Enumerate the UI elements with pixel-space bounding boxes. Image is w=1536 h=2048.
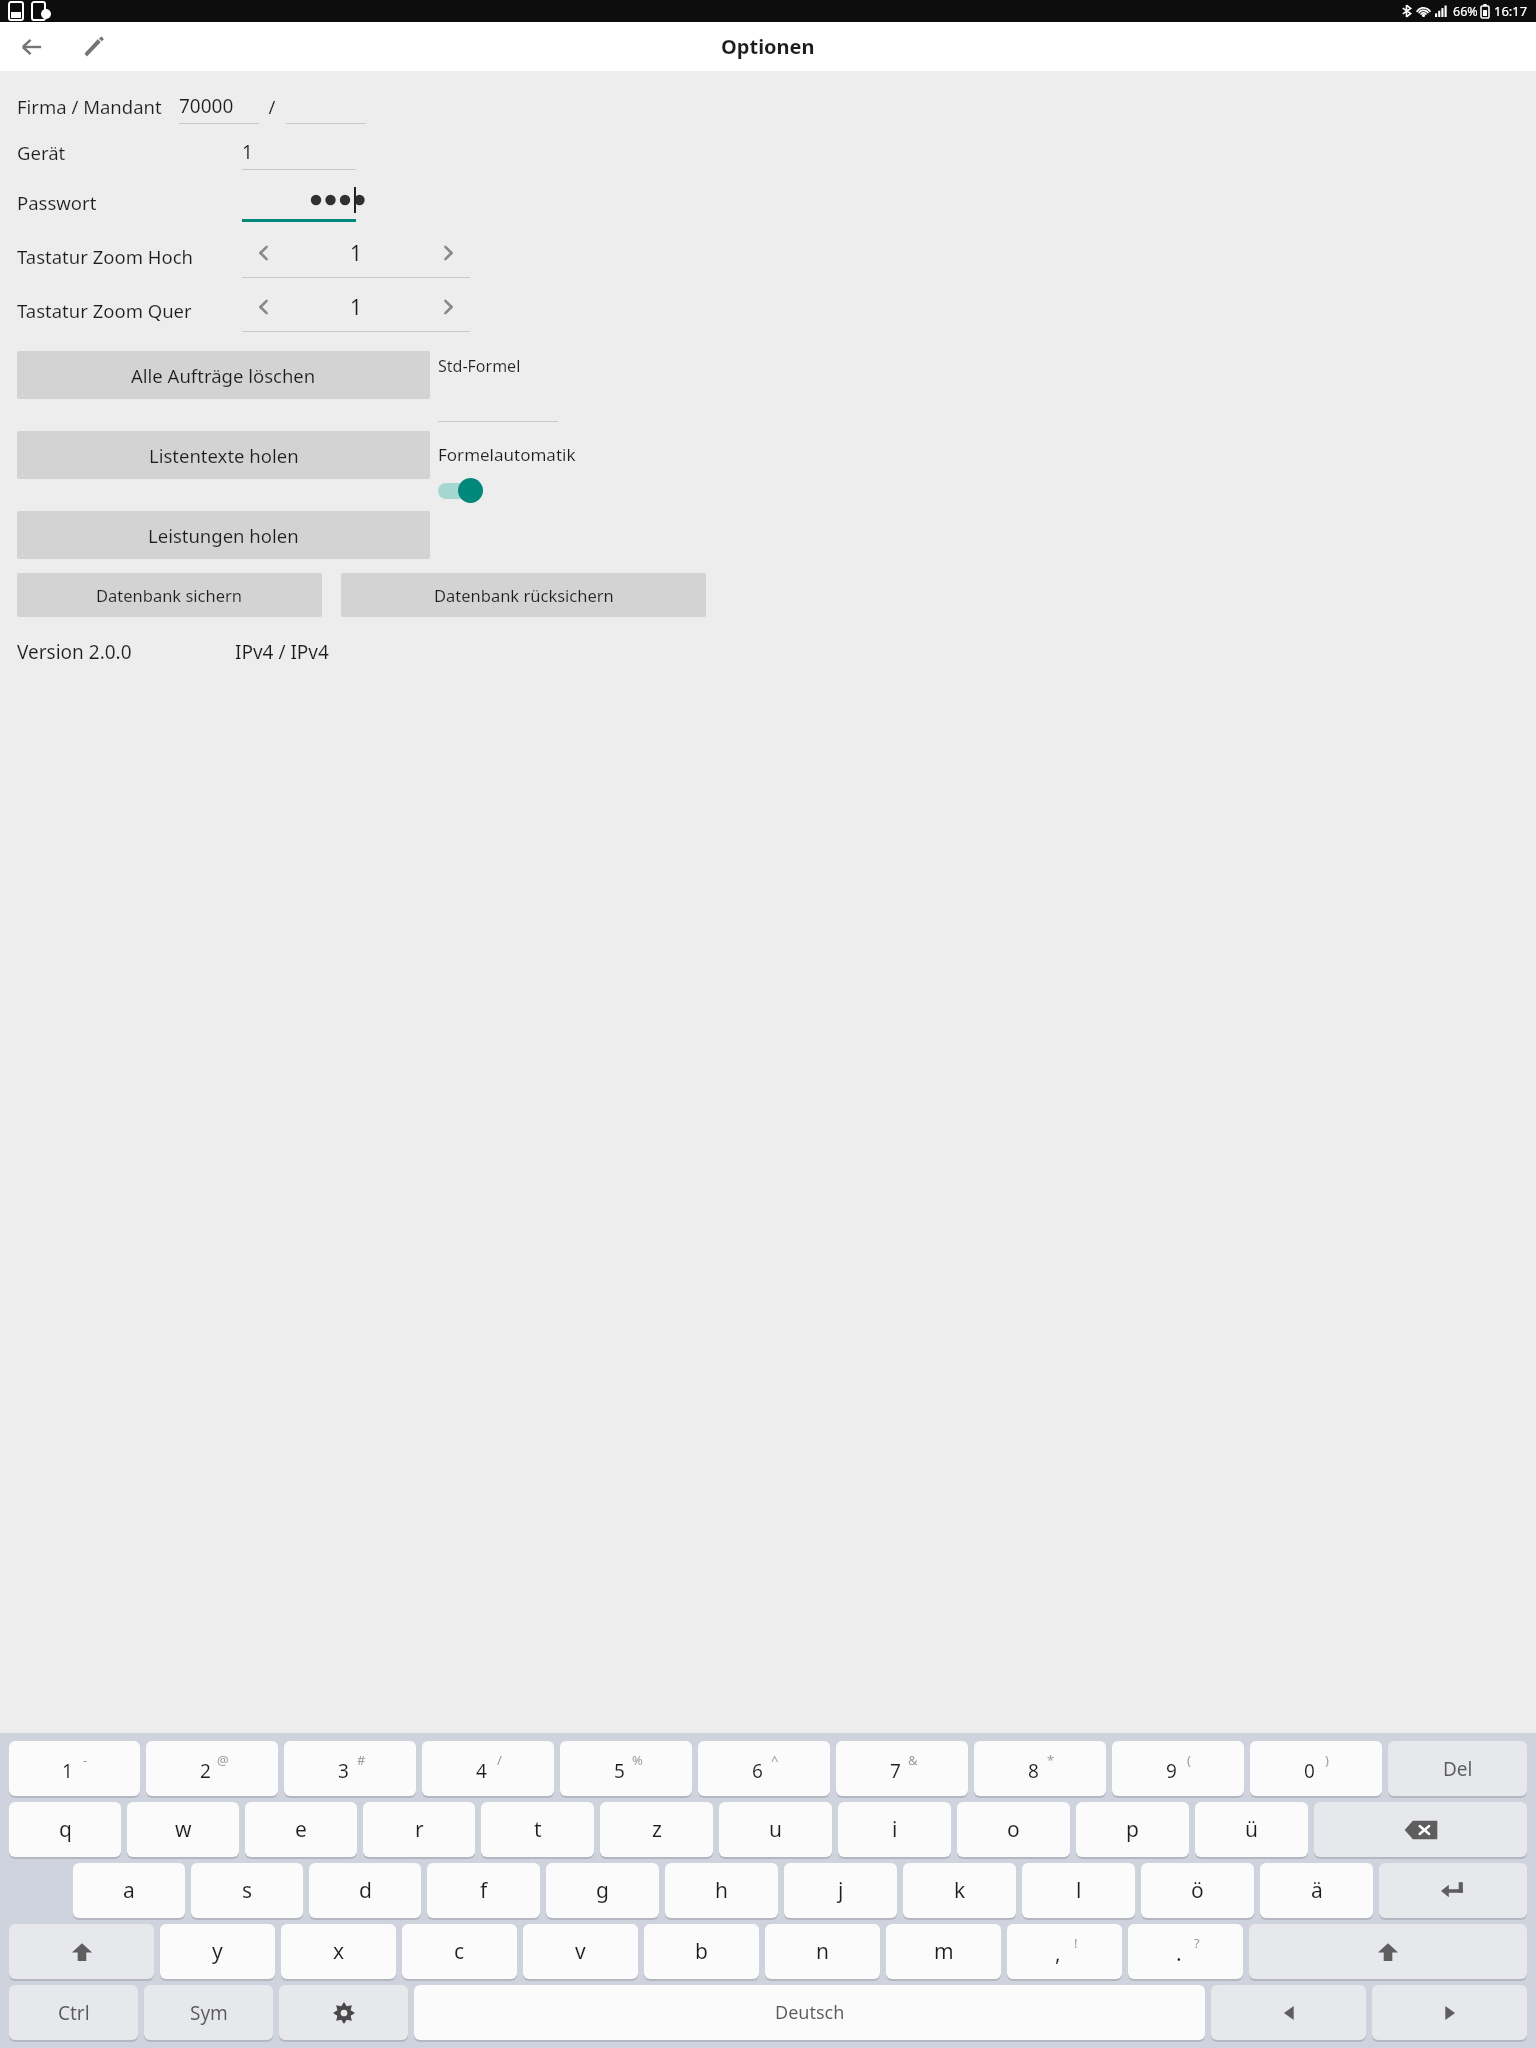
staticText: w: [175, 1815, 192, 1844]
button[interactable]: i: [838, 1802, 951, 1857]
staticText: &: [908, 1751, 918, 1769]
button[interactable]: j: [784, 1863, 897, 1918]
button[interactable]: ö: [1141, 1863, 1254, 1918]
button[interactable]: s: [191, 1863, 303, 1918]
staticText: /: [259, 94, 286, 119]
staticText: i: [892, 1815, 898, 1844]
button[interactable]: Alle Aufträge löschen: [17, 351, 430, 399]
button[interactable]: t: [481, 1802, 594, 1857]
staticText: 7: [890, 1758, 901, 1784]
staticText: j: [838, 1876, 844, 1905]
button[interactable]: d: [309, 1863, 421, 1918]
button[interactable]: n: [765, 1924, 880, 1979]
button[interactable]: 1: [9, 1741, 140, 1796]
button[interactable]: o: [957, 1802, 1070, 1857]
button[interactable]: Datenbank sichern: [17, 573, 322, 617]
staticText: ^: [771, 1751, 779, 1769]
button[interactable]: Datenbank rücksichern: [341, 573, 706, 617]
button[interactable]: 70000: [179, 88, 259, 124]
staticText: 5: [614, 1758, 625, 1784]
button[interactable]: a: [73, 1863, 185, 1918]
staticText: Ctrl: [58, 2000, 90, 2026]
staticText: (: [1187, 1751, 1191, 1769]
staticText: n: [816, 1937, 829, 1966]
staticText: Passwort: [17, 190, 97, 215]
button[interactable]: Umschalt: [1249, 1924, 1527, 1979]
staticText: *: [1047, 1751, 1055, 1769]
button[interactable]: r: [363, 1802, 475, 1857]
button[interactable]: c: [402, 1924, 517, 1979]
button[interactable]: 9: [1112, 1741, 1244, 1796]
button[interactable]: 4: [422, 1741, 554, 1796]
button[interactable]: Erhöhen: [426, 234, 470, 272]
button[interactable]: b: [644, 1924, 759, 1979]
staticText: Firma / Mandant: [17, 94, 162, 119]
staticText: Datenbank rücksichern: [434, 584, 614, 606]
button[interactable]: 8: [974, 1741, 1106, 1796]
button[interactable]: w: [127, 1802, 239, 1857]
staticText: Datenbank sichern: [96, 584, 243, 606]
button[interactable]: [242, 182, 356, 222]
button[interactable]: v: [523, 1924, 638, 1979]
button[interactable]: Del: [1388, 1741, 1527, 1796]
button[interactable]: Eingabe: [1379, 1863, 1527, 1918]
staticText: 1: [242, 139, 253, 165]
staticText: Deutsch: [775, 2000, 845, 2025]
button[interactable]: h: [665, 1863, 778, 1918]
button[interactable]: k: [903, 1863, 1016, 1918]
button[interactable]: z: [600, 1802, 713, 1857]
button[interactable]: Leistungen holen: [17, 511, 430, 559]
button[interactable]: p: [1076, 1802, 1189, 1857]
button[interactable]: g: [546, 1863, 659, 1918]
button[interactable]: e: [245, 1802, 357, 1857]
button[interactable]: Ctrl: [9, 1985, 138, 2040]
staticText: 1: [350, 293, 363, 322]
button[interactable]: Rechts: [1372, 1985, 1527, 2040]
button[interactable]: f: [427, 1863, 540, 1918]
staticText: s: [242, 1876, 253, 1905]
staticText: l: [1076, 1876, 1082, 1905]
button[interactable]: x: [281, 1924, 396, 1979]
button[interactable]: y: [160, 1924, 275, 1979]
button[interactable]: 7: [836, 1741, 968, 1796]
button[interactable]: u: [719, 1802, 832, 1857]
button[interactable]: Erhöhen: [426, 288, 470, 326]
button[interactable]: Bearbeiten: [70, 23, 118, 71]
button[interactable]: 0: [1250, 1741, 1382, 1796]
button[interactable]: Zurück: [8, 23, 56, 71]
staticText: 1: [62, 1758, 73, 1784]
staticText: a: [123, 1876, 135, 1905]
staticText: h: [715, 1876, 728, 1905]
button[interactable]: Verringern: [242, 288, 286, 326]
staticText: f: [480, 1876, 488, 1905]
button[interactable]: Einstellungen: [279, 1985, 408, 2040]
staticText: z: [652, 1815, 662, 1844]
button[interactable]: [286, 88, 366, 124]
button[interactable]: 5: [560, 1741, 692, 1796]
button[interactable]: l: [1022, 1863, 1135, 1918]
staticText: 3: [338, 1758, 349, 1784]
button[interactable]: q: [9, 1802, 121, 1857]
button[interactable]: .: [1128, 1924, 1243, 1979]
button[interactable]: Rücktaste: [1314, 1802, 1527, 1857]
staticText: !: [1074, 1934, 1078, 1952]
staticText: e: [295, 1815, 307, 1844]
button[interactable]: [438, 474, 494, 506]
button[interactable]: Listentexte holen: [17, 431, 430, 479]
button[interactable]: Verringern: [242, 234, 286, 272]
button[interactable]: ä: [1260, 1863, 1373, 1918]
button[interactable]: ü: [1195, 1802, 1308, 1857]
button[interactable]: Umschalt: [9, 1924, 154, 1979]
staticText: Optionen: [721, 33, 815, 60]
staticText: %: [632, 1751, 643, 1769]
button[interactable]: 1: [242, 134, 356, 170]
button[interactable]: m: [886, 1924, 1001, 1979]
button[interactable]: Deutsch: [414, 1985, 1205, 2040]
staticText: 8: [1028, 1758, 1039, 1784]
button[interactable]: ,: [1007, 1924, 1122, 1979]
button[interactable]: 2: [146, 1741, 278, 1796]
button[interactable]: 3: [284, 1741, 416, 1796]
button[interactable]: 6: [698, 1741, 830, 1796]
button[interactable]: Sym: [144, 1985, 273, 2040]
button[interactable]: Links: [1211, 1985, 1366, 2040]
